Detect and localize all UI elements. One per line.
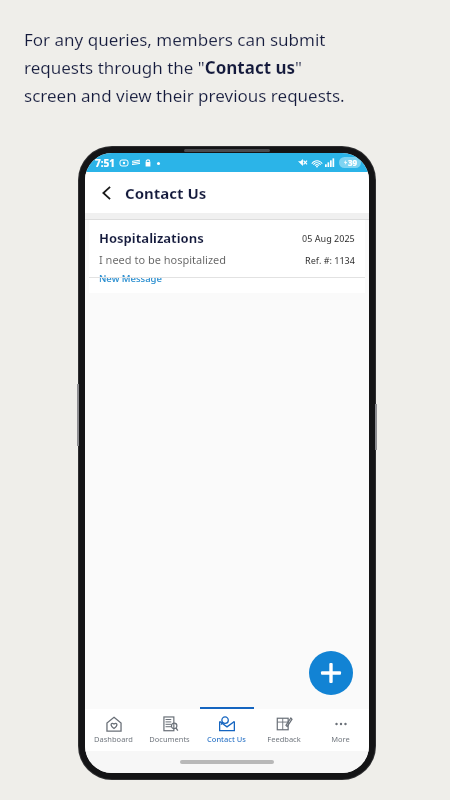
staticText: Feedback [267, 734, 301, 744]
staticText: screen and view their previous requests. [24, 84, 345, 107]
button[interactable]: Contact Us [198, 709, 255, 751]
staticText: requests through the "Contact us" [24, 56, 302, 79]
button[interactable]: Documents [141, 709, 198, 751]
staticText: More [331, 734, 350, 744]
staticText: For any queries, members can submit [24, 28, 326, 51]
staticText: 7:51 [95, 156, 115, 170]
staticText: Dashboard [94, 734, 133, 744]
button[interactable]: Back [93, 179, 121, 207]
button[interactable]: Feedback [255, 709, 312, 751]
staticText: I need to be hospitalized [99, 252, 227, 267]
button[interactable]: Hospitalizations [89, 220, 365, 293]
staticText: Ref. #: 1134 [305, 254, 355, 266]
button[interactable]: Dashboard [85, 709, 141, 751]
staticText: Hospitalizations [99, 229, 204, 247]
button[interactable]: New request [309, 651, 353, 695]
staticText: 39 [348, 157, 358, 168]
staticText: Documents [149, 734, 190, 744]
staticText: Contact Us [207, 734, 246, 744]
button[interactable]: New Message [99, 272, 162, 285]
staticText: Contact Us [125, 183, 207, 203]
staticText: 05 Aug 2025 [302, 232, 355, 244]
button[interactable]: More [312, 709, 369, 751]
